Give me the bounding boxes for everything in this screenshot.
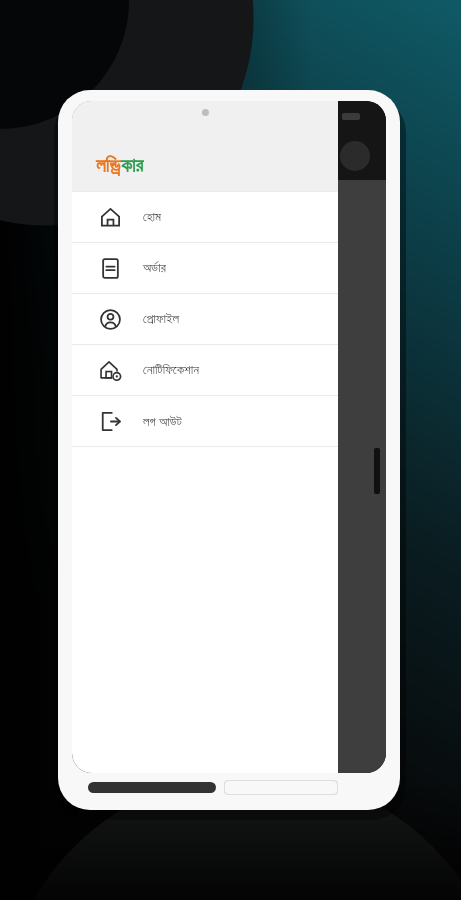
other: Log out: [100, 411, 121, 432]
staticText: হোম: [143, 211, 162, 224]
button[interactable]: Orders: [72, 243, 338, 293]
staticText: প্রোফাইল: [143, 313, 180, 326]
other: Orders: [100, 258, 121, 279]
button[interactable]: Notifications: [72, 345, 338, 395]
button[interactable]: Profile: [72, 294, 338, 344]
button[interactable]: Home: [72, 192, 338, 242]
other: Notifications: [100, 360, 121, 381]
other: Profile: [100, 309, 121, 330]
other: Home: [100, 207, 121, 228]
staticText: কার: [121, 157, 144, 176]
staticText: অর্ডার: [143, 262, 166, 275]
staticText: নোটিফিকেশান: [143, 364, 199, 377]
button[interactable]: Log out: [72, 396, 338, 446]
button[interactable]: Profile avatar: [340, 141, 370, 171]
staticText: লগ আউট: [143, 412, 182, 430]
staticText: লন্ড্রি: [96, 157, 121, 176]
